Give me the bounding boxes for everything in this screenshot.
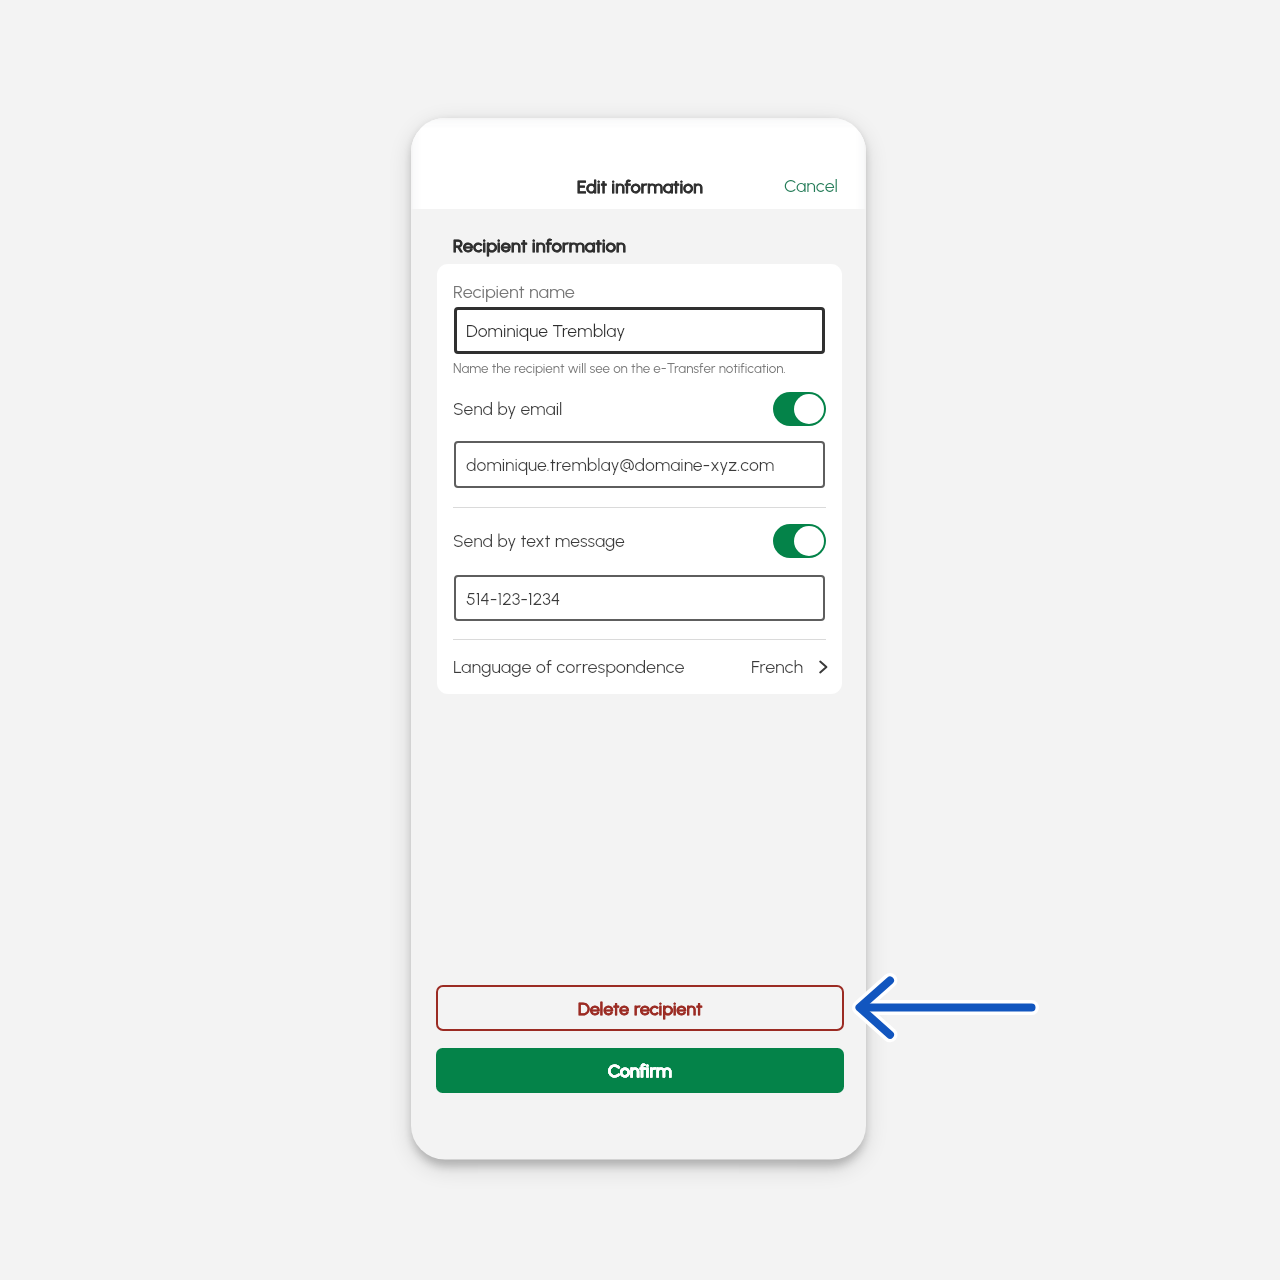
staticText: Delete recipient [578,998,703,1019]
button[interactable]: Cancel [770,169,852,202]
staticText: 514-123-1234 [466,588,561,609]
other: Callout arrow pointing to Delete recipie… [845,965,1045,1051]
staticText: Send by email [453,398,563,419]
button[interactable]: Language of correspondence [453,643,828,690]
staticText: Confirm [608,1060,672,1081]
button[interactable]: Send by text message, on [773,524,826,558]
staticText: Delete recipient [578,998,703,1019]
staticText: Recipient information [453,235,626,257]
staticText: French [751,656,804,678]
button[interactable]: Dominique Tremblay [454,307,825,354]
button[interactable]: Send by email, on [773,392,826,426]
button[interactable]: 514-123-1234 [454,575,825,621]
staticText: dominique.tremblay@domaine-xyz.com [466,454,775,475]
button[interactable]: Confirm [436,1048,844,1093]
staticText: Edit information [577,176,703,197]
staticText: Edit information [577,176,703,197]
staticText: Recipient information [453,235,626,257]
button[interactable]: Delete recipient [436,985,844,1031]
staticText: Dominique Tremblay [466,320,626,341]
other: Change language [819,659,828,675]
staticText: Edit information [577,176,703,197]
staticText: Recipient information [453,235,626,257]
staticText: Name the recipient will see on the e-Tra… [453,360,786,376]
staticText: Delete recipient [578,998,703,1019]
staticText: Recipient name [453,281,575,303]
button[interactable]: dominique.tremblay@domaine-xyz.com [454,441,825,488]
staticText: Send by text message [453,530,625,551]
staticText: Cancel [784,175,838,196]
staticText: Confirm [608,1060,672,1081]
staticText: Language of correspondence [453,656,685,678]
staticText: Confirm [608,1060,672,1081]
